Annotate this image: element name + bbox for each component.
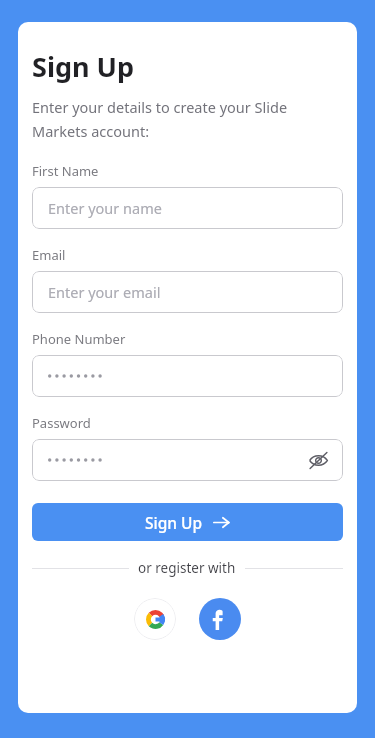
staticText: Sign Up: [145, 512, 203, 533]
staticText: Phone Number: [32, 330, 126, 348]
staticText: Enter your details to create your Slide …: [32, 97, 343, 141]
staticText: Sign Up: [32, 48, 135, 85]
staticText: Enter your email: [48, 282, 161, 302]
staticText: First Name: [32, 162, 99, 180]
staticText: or register with: [138, 559, 236, 577]
button[interactable]: Sign up with Google: [134, 598, 176, 640]
button[interactable]: [32, 355, 343, 397]
staticText: Enter your name: [48, 198, 162, 218]
button[interactable]: Toggle password visibility: [32, 439, 343, 481]
staticText: Password: [32, 414, 91, 432]
button[interactable]: Enter your email: [32, 271, 343, 313]
button[interactable]: Sign up with Facebook: [199, 598, 241, 640]
button[interactable]: Sign Up: [32, 503, 343, 541]
button[interactable]: Enter your name: [32, 187, 343, 229]
button[interactable]: Toggle password visibility: [303, 445, 333, 475]
staticText: Email: [32, 246, 66, 264]
